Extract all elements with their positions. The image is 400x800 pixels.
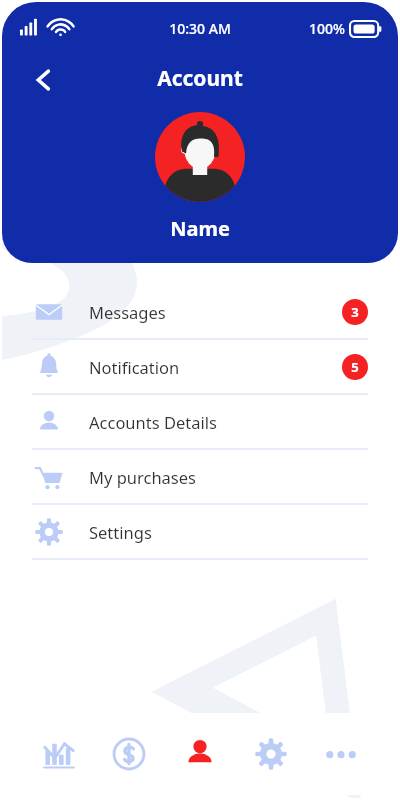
button[interactable]: Account [172,726,228,782]
staticText: Account [2,64,398,93]
button[interactable]: Notification [2,340,398,393]
button[interactable]: Settings [2,505,398,558]
button[interactable]: My purchases [2,450,398,503]
button[interactable]: Settings [243,726,299,782]
staticText: 5 [351,358,359,376]
button[interactable]: Messages [2,285,398,338]
staticText: Name [2,215,398,242]
staticText: My purchases [89,466,368,488]
staticText: Messages [89,301,342,323]
button[interactable]: More [313,726,369,782]
button[interactable]: Statistics [31,726,87,782]
button[interactable]: Back [24,60,64,100]
staticText: 10:30 AM [2,19,398,38]
staticText: Notification [89,356,342,378]
button[interactable]: Payments [101,726,157,782]
button[interactable]: Accounts Details [2,395,398,448]
staticText: Accounts Details [89,411,368,433]
staticText: 3 [351,303,359,321]
staticText: Settings [89,521,368,543]
staticText: 100% [309,19,345,38]
